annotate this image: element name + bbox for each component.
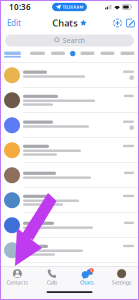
button[interactable]: Contacts xyxy=(0,266,35,287)
button[interactable]: Groups xyxy=(77,52,97,57)
button[interactable]: Search xyxy=(5,34,134,46)
staticText: Chats xyxy=(80,279,94,286)
button[interactable]: Settings xyxy=(104,266,139,287)
staticText: Chats xyxy=(52,17,78,29)
button[interactable] xyxy=(0,113,139,138)
button[interactable]: Edit xyxy=(3,15,25,31)
button[interactable] xyxy=(0,238,139,263)
button[interactable]: Unread xyxy=(68,51,77,58)
button[interactable] xyxy=(0,63,139,88)
staticText: Contacts xyxy=(6,279,28,286)
button[interactable] xyxy=(0,213,139,238)
staticText: Search xyxy=(63,36,85,45)
button[interactable] xyxy=(0,138,139,163)
staticText: 10:36 xyxy=(9,2,31,12)
button[interactable]: Bots xyxy=(117,52,137,57)
button[interactable] xyxy=(0,163,139,188)
staticText: Calls xyxy=(47,279,58,286)
button[interactable]: Work xyxy=(48,52,68,57)
staticText: Settings xyxy=(112,279,132,286)
button[interactable] xyxy=(0,88,139,113)
button[interactable]: Status xyxy=(111,16,124,29)
button[interactable]: All Chats xyxy=(0,51,27,57)
button[interactable]: New Message xyxy=(124,16,137,29)
button[interactable] xyxy=(0,188,139,213)
button[interactable]: 5 xyxy=(69,266,104,287)
staticText: Edit xyxy=(7,18,21,28)
button[interactable]: Personal xyxy=(27,52,48,57)
staticText: 5 xyxy=(90,268,92,273)
staticText: TELEGRAM xyxy=(62,4,83,10)
button[interactable]: Calls xyxy=(35,266,70,287)
button[interactable]: Channels xyxy=(97,52,117,57)
